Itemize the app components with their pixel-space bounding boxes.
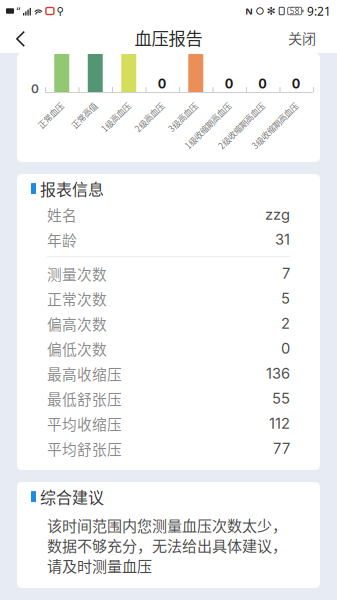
staticText: 0 xyxy=(281,340,290,357)
staticText: 该时间范围内您测量血压次数太少， 数据不够充分，无法给出具体建议， 请及时测量血… xyxy=(47,514,287,576)
staticText: 0 xyxy=(31,82,39,96)
staticText: 2级高血压 xyxy=(125,98,162,110)
staticText: 58 xyxy=(290,6,300,16)
button[interactable]: 关闭 xyxy=(277,22,337,53)
staticText: 报表信息 xyxy=(40,177,104,200)
staticText: 1级高血压 xyxy=(92,98,129,110)
staticText: 平均收缩压 xyxy=(47,413,122,434)
staticText: 0 xyxy=(225,76,234,92)
staticText: 正常血压 xyxy=(30,98,62,110)
staticText: 综合建议 xyxy=(40,485,104,508)
staticText: “ xyxy=(16,4,20,18)
staticText: 5 xyxy=(281,290,290,307)
staticText: 血压报告 xyxy=(134,25,202,50)
staticText: 年龄 xyxy=(47,229,77,250)
staticText: 77 xyxy=(273,440,290,457)
staticText: 最高收缩压 xyxy=(47,363,122,384)
staticText: 1级收缩期高血压 xyxy=(168,98,229,110)
staticText: N xyxy=(245,5,253,17)
staticText: 关闭 xyxy=(288,27,316,48)
staticText: 最低舒张压 xyxy=(47,388,122,409)
staticText: 平均舒张压 xyxy=(47,438,122,459)
staticText: 136 xyxy=(266,365,290,382)
staticText: zzg xyxy=(265,206,290,223)
staticText: 0 xyxy=(292,76,301,92)
staticText: 3级高血压 xyxy=(159,98,196,110)
staticText: 3级收缩期高血压 xyxy=(235,98,296,110)
staticText: 正常次数 xyxy=(47,288,107,309)
staticText: 9:21 xyxy=(307,3,331,19)
staticText: 0 xyxy=(258,76,267,92)
staticText: 偏高次数 xyxy=(47,313,107,334)
staticText: ⚲ xyxy=(56,5,64,17)
staticText: 偏低次数 xyxy=(47,338,107,359)
staticText: 0 xyxy=(158,76,167,92)
staticText: 姓名 xyxy=(47,204,77,225)
staticText: 112 xyxy=(269,415,290,432)
staticText: 31 xyxy=(275,231,290,248)
button[interactable]: Back xyxy=(0,22,40,53)
staticText: 7 xyxy=(282,265,290,282)
staticText: 测量次数 xyxy=(47,263,107,284)
staticText: 2级收缩期高血压 xyxy=(202,98,263,110)
staticText: 2 xyxy=(281,315,290,332)
staticText: 正常高值 xyxy=(63,98,95,110)
staticText: 55 xyxy=(272,390,290,407)
staticText: ✻ xyxy=(267,5,276,17)
